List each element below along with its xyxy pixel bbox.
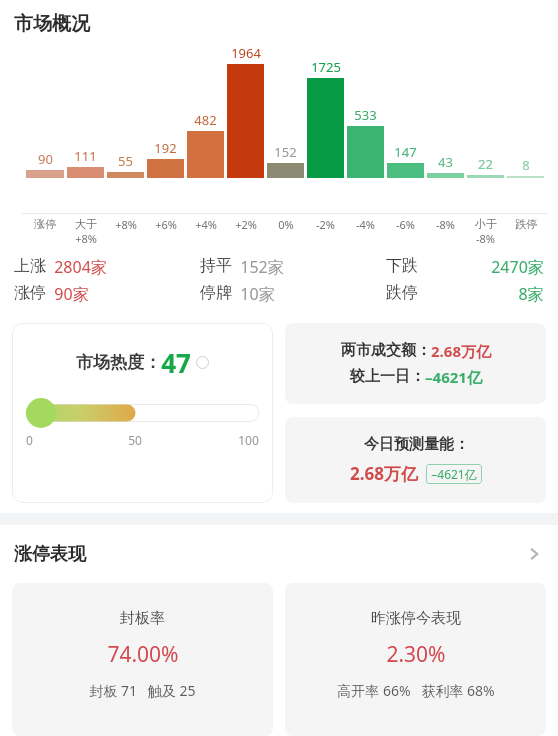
staticText: 涨停表现: [14, 543, 86, 566]
staticText: -4%: [356, 217, 375, 232]
staticText: -2%: [316, 217, 335, 232]
staticText: +8%: [75, 231, 97, 246]
staticText: 90家: [54, 283, 89, 305]
staticText: +4%: [195, 217, 217, 232]
staticText: 上涨: [14, 256, 46, 276]
staticText: 今日预测量能：: [364, 435, 469, 454]
staticText: 2470家: [491, 256, 544, 278]
staticText: 8: [522, 156, 530, 174]
staticText: -6%: [396, 217, 415, 232]
button[interactable]: 昨涨停今表现: [285, 583, 546, 736]
staticText: 2804家: [54, 256, 107, 278]
staticText: 封板 71 触及 25: [89, 681, 196, 700]
staticText: 50: [128, 432, 142, 448]
button[interactable]: 封板率: [12, 583, 273, 736]
staticText: 持平: [200, 256, 232, 276]
staticText: +6%: [155, 217, 177, 232]
staticText: 封板率: [120, 609, 165, 628]
staticText: 152: [274, 143, 297, 161]
staticText: 小于: [475, 217, 497, 231]
staticText: 涨停: [14, 283, 46, 303]
staticText: 2.30%: [386, 640, 446, 669]
staticText: 跌停: [386, 283, 418, 303]
button[interactable]: 两市成交额：: [285, 323, 546, 404]
staticText: –4621亿: [425, 367, 482, 387]
staticText: 下跌: [386, 256, 418, 276]
staticText: 2.68万亿: [350, 462, 418, 485]
staticText: 两市成交额：: [341, 341, 431, 360]
button[interactable]: 涨停表现: [0, 525, 558, 583]
staticText: 较上一日：: [350, 367, 425, 386]
staticText: 111: [74, 147, 97, 165]
staticText: 482: [194, 111, 217, 129]
staticText: +8%: [115, 217, 137, 232]
staticText: 高开率 66% 获利率 68%: [337, 681, 495, 700]
staticText: 100: [238, 432, 259, 448]
staticText: 90: [38, 150, 53, 168]
staticText: 74.00%: [107, 640, 179, 669]
staticText: 1725: [311, 58, 341, 76]
staticText: 0%: [278, 217, 294, 232]
button[interactable]: 今日预测量能：: [285, 417, 546, 503]
staticText: 跌停: [515, 217, 537, 231]
staticText: 1964: [231, 44, 261, 62]
staticText: 533: [354, 106, 377, 124]
staticText: 涨停: [34, 217, 56, 231]
button[interactable]: 说明: [196, 356, 209, 369]
staticText: –4621亿: [431, 466, 477, 482]
staticText: -8%: [476, 231, 495, 246]
staticText: 市场概况: [14, 12, 90, 36]
staticText: 43: [438, 153, 453, 171]
staticText: 市场热度：: [76, 352, 161, 373]
staticText: 22: [478, 155, 493, 173]
staticText: 192: [154, 139, 177, 157]
staticText: 152家: [240, 256, 284, 278]
staticText: 2.68万亿: [431, 341, 491, 361]
staticText: 0: [26, 432, 33, 448]
button[interactable]: 市场热度：: [12, 323, 273, 503]
staticText: 8家: [518, 283, 544, 305]
staticText: 停牌: [200, 283, 232, 303]
staticText: 47: [161, 345, 191, 380]
other: 查看更多: [526, 546, 542, 562]
staticText: 昨涨停今表现: [371, 609, 461, 628]
staticText: +2%: [235, 217, 257, 232]
staticText: -8%: [436, 217, 455, 232]
staticText: 147: [394, 143, 417, 161]
staticText: 10家: [240, 283, 275, 305]
staticText: 大于: [75, 217, 97, 231]
staticText: 55: [118, 152, 133, 170]
